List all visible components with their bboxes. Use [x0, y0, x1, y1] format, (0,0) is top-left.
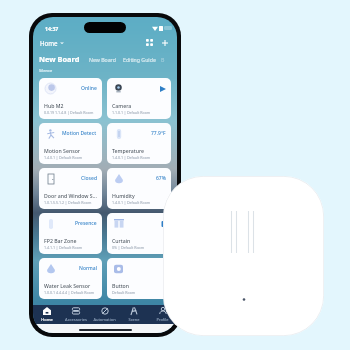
button[interactable]: Camera	[107, 78, 171, 119]
staticText: 77.9°F	[151, 130, 166, 137]
button[interactable]: Motion Detect	[39, 123, 102, 164]
staticText: Home	[40, 39, 58, 47]
button[interactable]: Grid view	[144, 37, 155, 48]
staticText: Online	[81, 85, 97, 92]
button[interactable]: Closed	[39, 168, 102, 209]
staticText: Camera	[112, 102, 132, 109]
button[interactable]: Editing Guide	[123, 56, 156, 63]
staticText: 1.0.1.5.5.1.2 | Default Room	[44, 200, 92, 205]
staticText: Temperature	[112, 147, 145, 154]
staticText: 0% | Default Room	[112, 245, 145, 250]
staticText: Scene	[128, 317, 140, 322]
staticText: Silence	[39, 68, 53, 73]
button[interactable]: B	[161, 56, 165, 63]
staticText: FP2 Bar Zone	[44, 237, 77, 244]
staticText: Curtain	[112, 237, 131, 244]
staticText: Default Room	[112, 290, 136, 295]
staticText: Profile	[156, 317, 169, 322]
button[interactable]: 67%	[107, 168, 171, 209]
staticText: Hub M2	[44, 102, 64, 109]
button[interactable]: Home	[33, 307, 61, 322]
button[interactable]: Online	[39, 78, 102, 119]
staticText: Automation	[93, 317, 116, 322]
staticText: Accessories	[65, 317, 87, 322]
button[interactable]: Profile	[148, 307, 177, 322]
staticText: 0.0.19 1.1.4.8 | Default Room	[44, 110, 94, 115]
button[interactable]: Scene	[119, 307, 148, 322]
staticText: 1.4.0.1 | Default Room	[112, 200, 151, 205]
staticText: Door and Window S...	[44, 192, 97, 199]
staticText: Closed	[81, 175, 97, 182]
button[interactable]: New Board	[39, 54, 80, 64]
button[interactable]: Accessories	[61, 307, 90, 322]
staticText: 14:37	[45, 25, 59, 32]
staticText: Home	[41, 317, 53, 322]
button[interactable]: New Board	[89, 56, 116, 63]
staticText: Motion Detect	[62, 130, 97, 137]
staticText: 1.4.1.1 | Default Room	[44, 245, 83, 250]
button[interactable]: Presence	[39, 213, 102, 254]
button[interactable]: Button	[107, 258, 171, 299]
button[interactable]: Home	[40, 39, 64, 47]
button[interactable]: Automation	[90, 307, 119, 322]
staticText: Motion Sensor	[44, 147, 81, 154]
button[interactable]: Normal	[39, 258, 102, 299]
button[interactable]: Curtain	[107, 213, 171, 254]
staticText: 1.1.0.1 | Default Room	[112, 110, 151, 115]
staticText: 1.4.0.1 | Default Room	[112, 155, 151, 160]
staticText: Button	[112, 282, 130, 289]
staticText: 67%	[156, 175, 166, 182]
staticText: Normal	[79, 265, 97, 272]
button[interactable]: 77.9°F	[107, 123, 171, 164]
staticText: Presence	[75, 220, 97, 227]
button[interactable]: Add	[159, 37, 170, 48]
staticText: Humidity	[112, 192, 135, 199]
staticText: 1.4.0.1 | Default Room	[44, 155, 83, 160]
staticText: 1.0.0.1 4.4.4.4 | Default Room	[44, 290, 95, 295]
staticText: Water Leak Sensor	[44, 282, 91, 289]
